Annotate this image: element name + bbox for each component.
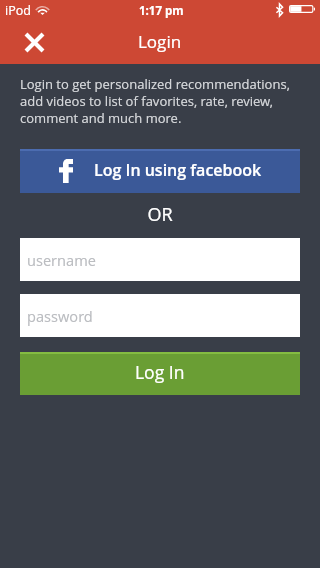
staticText: Login xyxy=(138,30,182,53)
button[interactable]: Log In xyxy=(20,352,300,395)
staticText: password xyxy=(27,306,93,326)
staticText: Login to get personalized recommendation… xyxy=(20,75,300,127)
button[interactable]: password xyxy=(20,294,300,337)
staticText: OR xyxy=(0,202,320,227)
staticText: Log In using facebook xyxy=(94,159,262,181)
staticText: Log In xyxy=(135,360,185,384)
staticText: iPod xyxy=(5,2,31,19)
staticText: 1:17 pm xyxy=(139,3,184,19)
button[interactable]: Close xyxy=(12,20,56,64)
button[interactable]: username xyxy=(20,238,300,281)
staticText: username xyxy=(27,250,96,270)
button[interactable]: Log In using facebook xyxy=(20,149,300,193)
